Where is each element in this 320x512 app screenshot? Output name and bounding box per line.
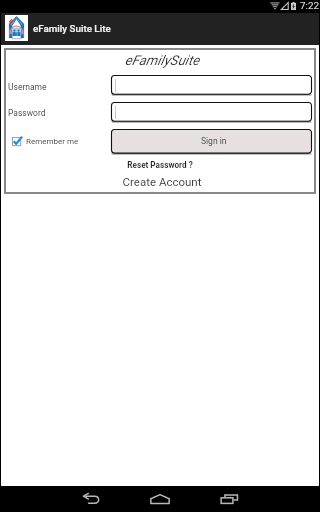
staticText: Remember me — [26, 137, 79, 146]
button[interactable]: Recent apps — [206, 486, 252, 512]
button[interactable]: Home — [137, 486, 183, 512]
button[interactable]: Reset Password ? — [4, 160, 316, 170]
staticText: eFamilySuite — [6, 52, 318, 68]
button[interactable]: Sign in — [111, 129, 312, 155]
button[interactable]: Remember me — [12, 136, 79, 147]
button[interactable]: Create Account — [6, 175, 318, 188]
button[interactable]: Back — [68, 486, 114, 512]
button[interactable] — [111, 75, 312, 96]
staticText: Password — [8, 108, 46, 118]
staticText: eFamily Suite Lite — [33, 23, 111, 34]
button[interactable] — [111, 102, 312, 123]
staticText: Sign in — [201, 136, 227, 146]
staticText: 7:22 — [300, 0, 319, 11]
staticText: Username — [8, 82, 47, 92]
